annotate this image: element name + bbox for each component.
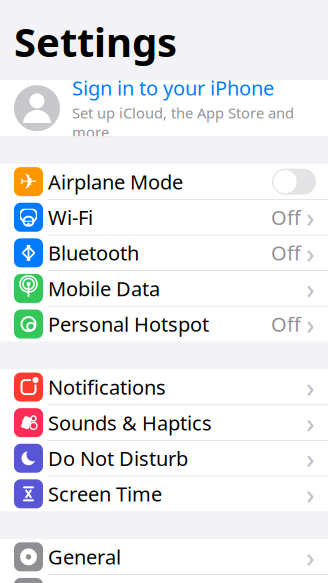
staticText: › xyxy=(306,271,315,306)
staticText: Wi-Fi xyxy=(48,204,93,231)
staticText: Sounds & Haptics xyxy=(48,409,212,436)
button[interactable]: Do Not Disturb xyxy=(0,441,328,476)
button[interactable]: Sign in to your iPhone xyxy=(0,80,328,136)
staticText: Do Not Disturb xyxy=(48,445,188,472)
staticText: › xyxy=(306,539,315,575)
staticText: ✈ xyxy=(19,170,37,194)
staticText: › xyxy=(306,306,315,342)
button[interactable]: Notifications xyxy=(0,370,328,405)
button[interactable]: General xyxy=(0,539,328,574)
staticText: Mobile Data xyxy=(48,275,160,302)
staticText: Bluetooth xyxy=(48,240,139,266)
button[interactable]: Personal Hotspot xyxy=(0,307,328,342)
button[interactable]: Screen Time xyxy=(0,476,328,511)
staticText: Personal Hotspot xyxy=(48,311,209,337)
staticText: Screen Time xyxy=(48,481,162,507)
button[interactable]: Control Centre xyxy=(0,575,328,583)
button[interactable]: Wi-Fi xyxy=(0,200,328,235)
staticText: Off xyxy=(271,204,301,231)
staticText: › xyxy=(306,405,315,440)
staticText: Notifications xyxy=(48,374,166,400)
staticText: › xyxy=(306,235,315,271)
staticText: Sign in to your iPhone xyxy=(72,74,274,101)
staticText: Airplane Mode xyxy=(48,168,183,195)
staticText: › xyxy=(306,441,315,476)
staticText: › xyxy=(306,369,315,405)
button[interactable]: ✈ xyxy=(0,164,328,199)
button[interactable]: Mobile Data xyxy=(0,271,328,306)
staticText: Set up iCloud, the App Store and more. xyxy=(72,103,294,142)
staticText: › xyxy=(306,476,315,512)
staticText: General xyxy=(48,544,121,570)
staticText: Off xyxy=(271,240,301,266)
button[interactable]: Bluetooth xyxy=(0,235,328,270)
staticText: Settings xyxy=(14,15,177,68)
staticText: Off xyxy=(271,311,301,337)
button[interactable]: Sounds & Haptics xyxy=(0,405,328,440)
staticText: › xyxy=(306,200,315,235)
